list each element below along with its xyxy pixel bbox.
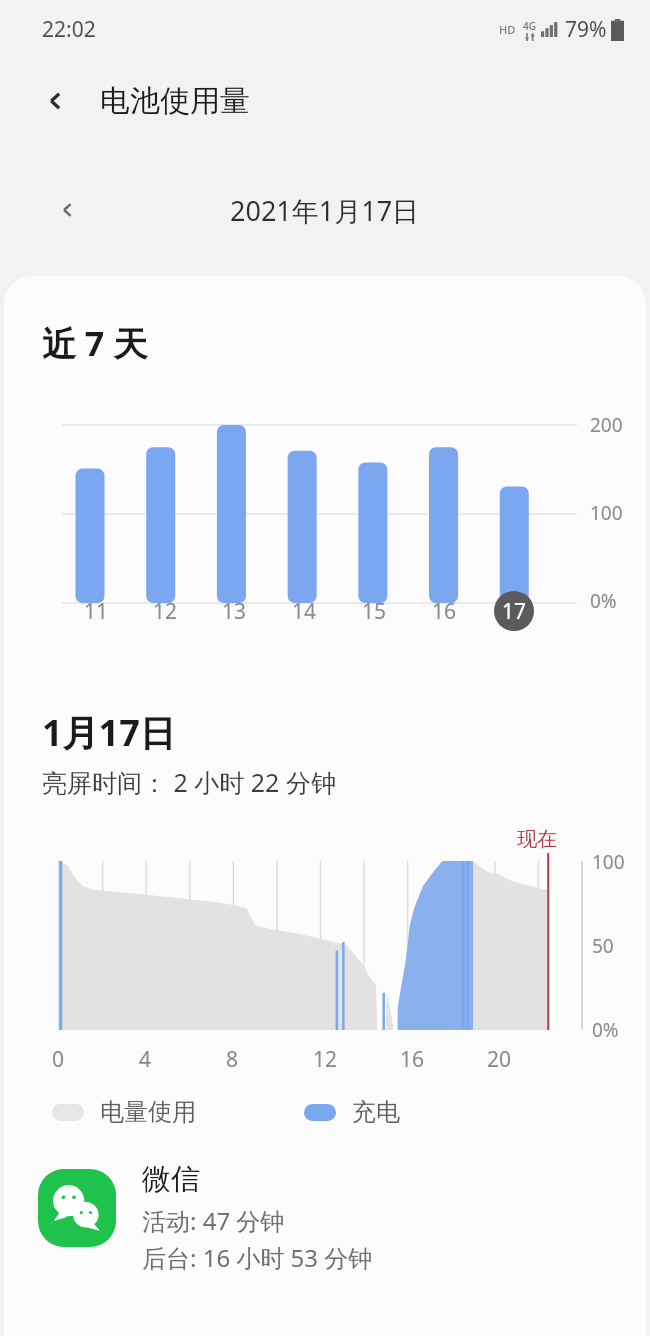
button[interactable]: 微信 bbox=[4, 1161, 646, 1281]
button[interactable]: Previous day bbox=[44, 186, 92, 234]
staticText: 100 bbox=[592, 849, 625, 875]
staticText: 1月17日 bbox=[42, 708, 176, 757]
staticText: 电量使用 bbox=[100, 1097, 196, 1127]
button[interactable]: 11 bbox=[78, 591, 115, 632]
staticText: 0 bbox=[52, 1045, 65, 1074]
staticText: 亮屏时间： 2 小时 22 分钟 bbox=[42, 765, 336, 799]
staticText: 电池使用量 bbox=[100, 82, 250, 120]
staticText: 50 bbox=[592, 933, 614, 959]
staticText: 100 bbox=[590, 500, 623, 526]
staticText: 4 bbox=[139, 1045, 152, 1074]
button[interactable]: 13 bbox=[216, 591, 253, 632]
staticText: 充电 bbox=[352, 1097, 400, 1127]
button[interactable]: 充电 bbox=[304, 1097, 400, 1127]
button[interactable]: Back bbox=[30, 75, 82, 127]
staticText: 近 7 天 bbox=[42, 320, 148, 366]
staticText: 微信 bbox=[142, 1161, 200, 1198]
staticText: 20 bbox=[487, 1045, 512, 1074]
staticText: 0% bbox=[590, 588, 617, 614]
button[interactable]: 12 bbox=[147, 591, 184, 632]
staticText: 2021年1月17日 bbox=[230, 192, 420, 229]
staticText: 22:02 bbox=[42, 15, 96, 44]
staticText: 4G bbox=[523, 19, 536, 33]
staticText: 15 bbox=[362, 597, 387, 626]
staticText: 现在 bbox=[517, 827, 557, 852]
button[interactable]: 17 bbox=[494, 591, 534, 631]
button[interactable]: 电量使用 bbox=[52, 1097, 196, 1127]
staticText: 12 bbox=[313, 1045, 338, 1074]
staticText: 8 bbox=[226, 1045, 239, 1074]
staticText: 11 bbox=[84, 597, 109, 626]
button[interactable]: 16 bbox=[426, 591, 463, 632]
staticText: 0% bbox=[592, 1017, 619, 1043]
staticText: 200 bbox=[590, 412, 623, 438]
staticText: 17 bbox=[502, 597, 527, 626]
staticText: 12 bbox=[153, 597, 178, 626]
staticText: HD bbox=[499, 22, 516, 37]
staticText: 79% bbox=[565, 15, 607, 44]
staticText: 14 bbox=[292, 597, 317, 626]
staticText: 13 bbox=[222, 597, 247, 626]
staticText: 活动: 47 分钟 bbox=[142, 1204, 285, 1237]
staticText: 后台: 16 小时 53 分钟 bbox=[142, 1241, 373, 1274]
staticText: 16 bbox=[432, 597, 457, 626]
button[interactable]: 15 bbox=[356, 591, 393, 632]
staticText: 16 bbox=[400, 1045, 425, 1074]
button[interactable]: 14 bbox=[286, 591, 323, 632]
